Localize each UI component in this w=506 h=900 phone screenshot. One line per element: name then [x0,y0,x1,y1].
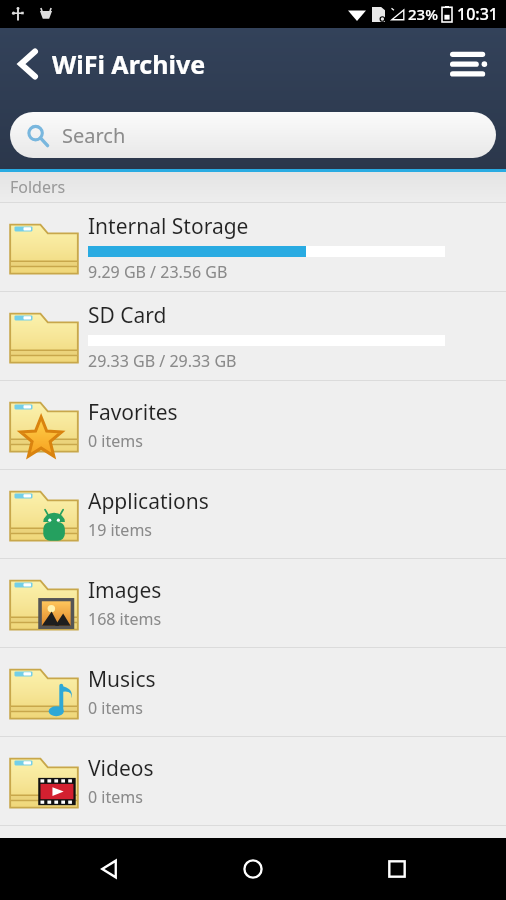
button[interactable]: Videos [0,737,506,826]
button[interactable]: SD Card [0,292,506,381]
staticText: 23% [408,4,438,24]
button[interactable]: Internal Storage [0,203,506,292]
button[interactable]: Musics [0,648,506,737]
staticText: 168 items [88,608,162,630]
button[interactable]: Search [10,112,496,158]
button[interactable]: Favorites [0,381,506,470]
staticText: Favorites [88,398,178,427]
staticText: 0 items [88,430,143,452]
button[interactable]: Applications [0,470,506,559]
staticText: 10:31 [457,3,498,25]
staticText: Search [62,122,126,149]
button[interactable]: Recents [362,838,432,900]
staticText: Applications [88,487,209,516]
staticText: WiFi Archive [52,47,206,81]
button[interactable]: Back [0,28,434,100]
staticText: Images [88,576,162,605]
staticText: Musics [88,665,156,694]
staticText: 9.29 GB / 23.56 GB [88,261,228,283]
button[interactable]: Back [74,838,144,900]
staticText: SD Card [88,301,167,330]
staticText: 19 items [88,519,153,541]
staticText: 29.33 GB / 29.33 GB [88,350,237,372]
staticText: Internal Storage [88,212,249,241]
button[interactable]: Home [218,838,288,900]
button[interactable]: Menu [434,28,506,100]
staticText: Folders [10,176,66,198]
staticText: 0 items [88,786,143,808]
button[interactable]: Images [0,559,506,648]
staticText: Videos [88,754,154,783]
staticText: 0 items [88,697,143,719]
